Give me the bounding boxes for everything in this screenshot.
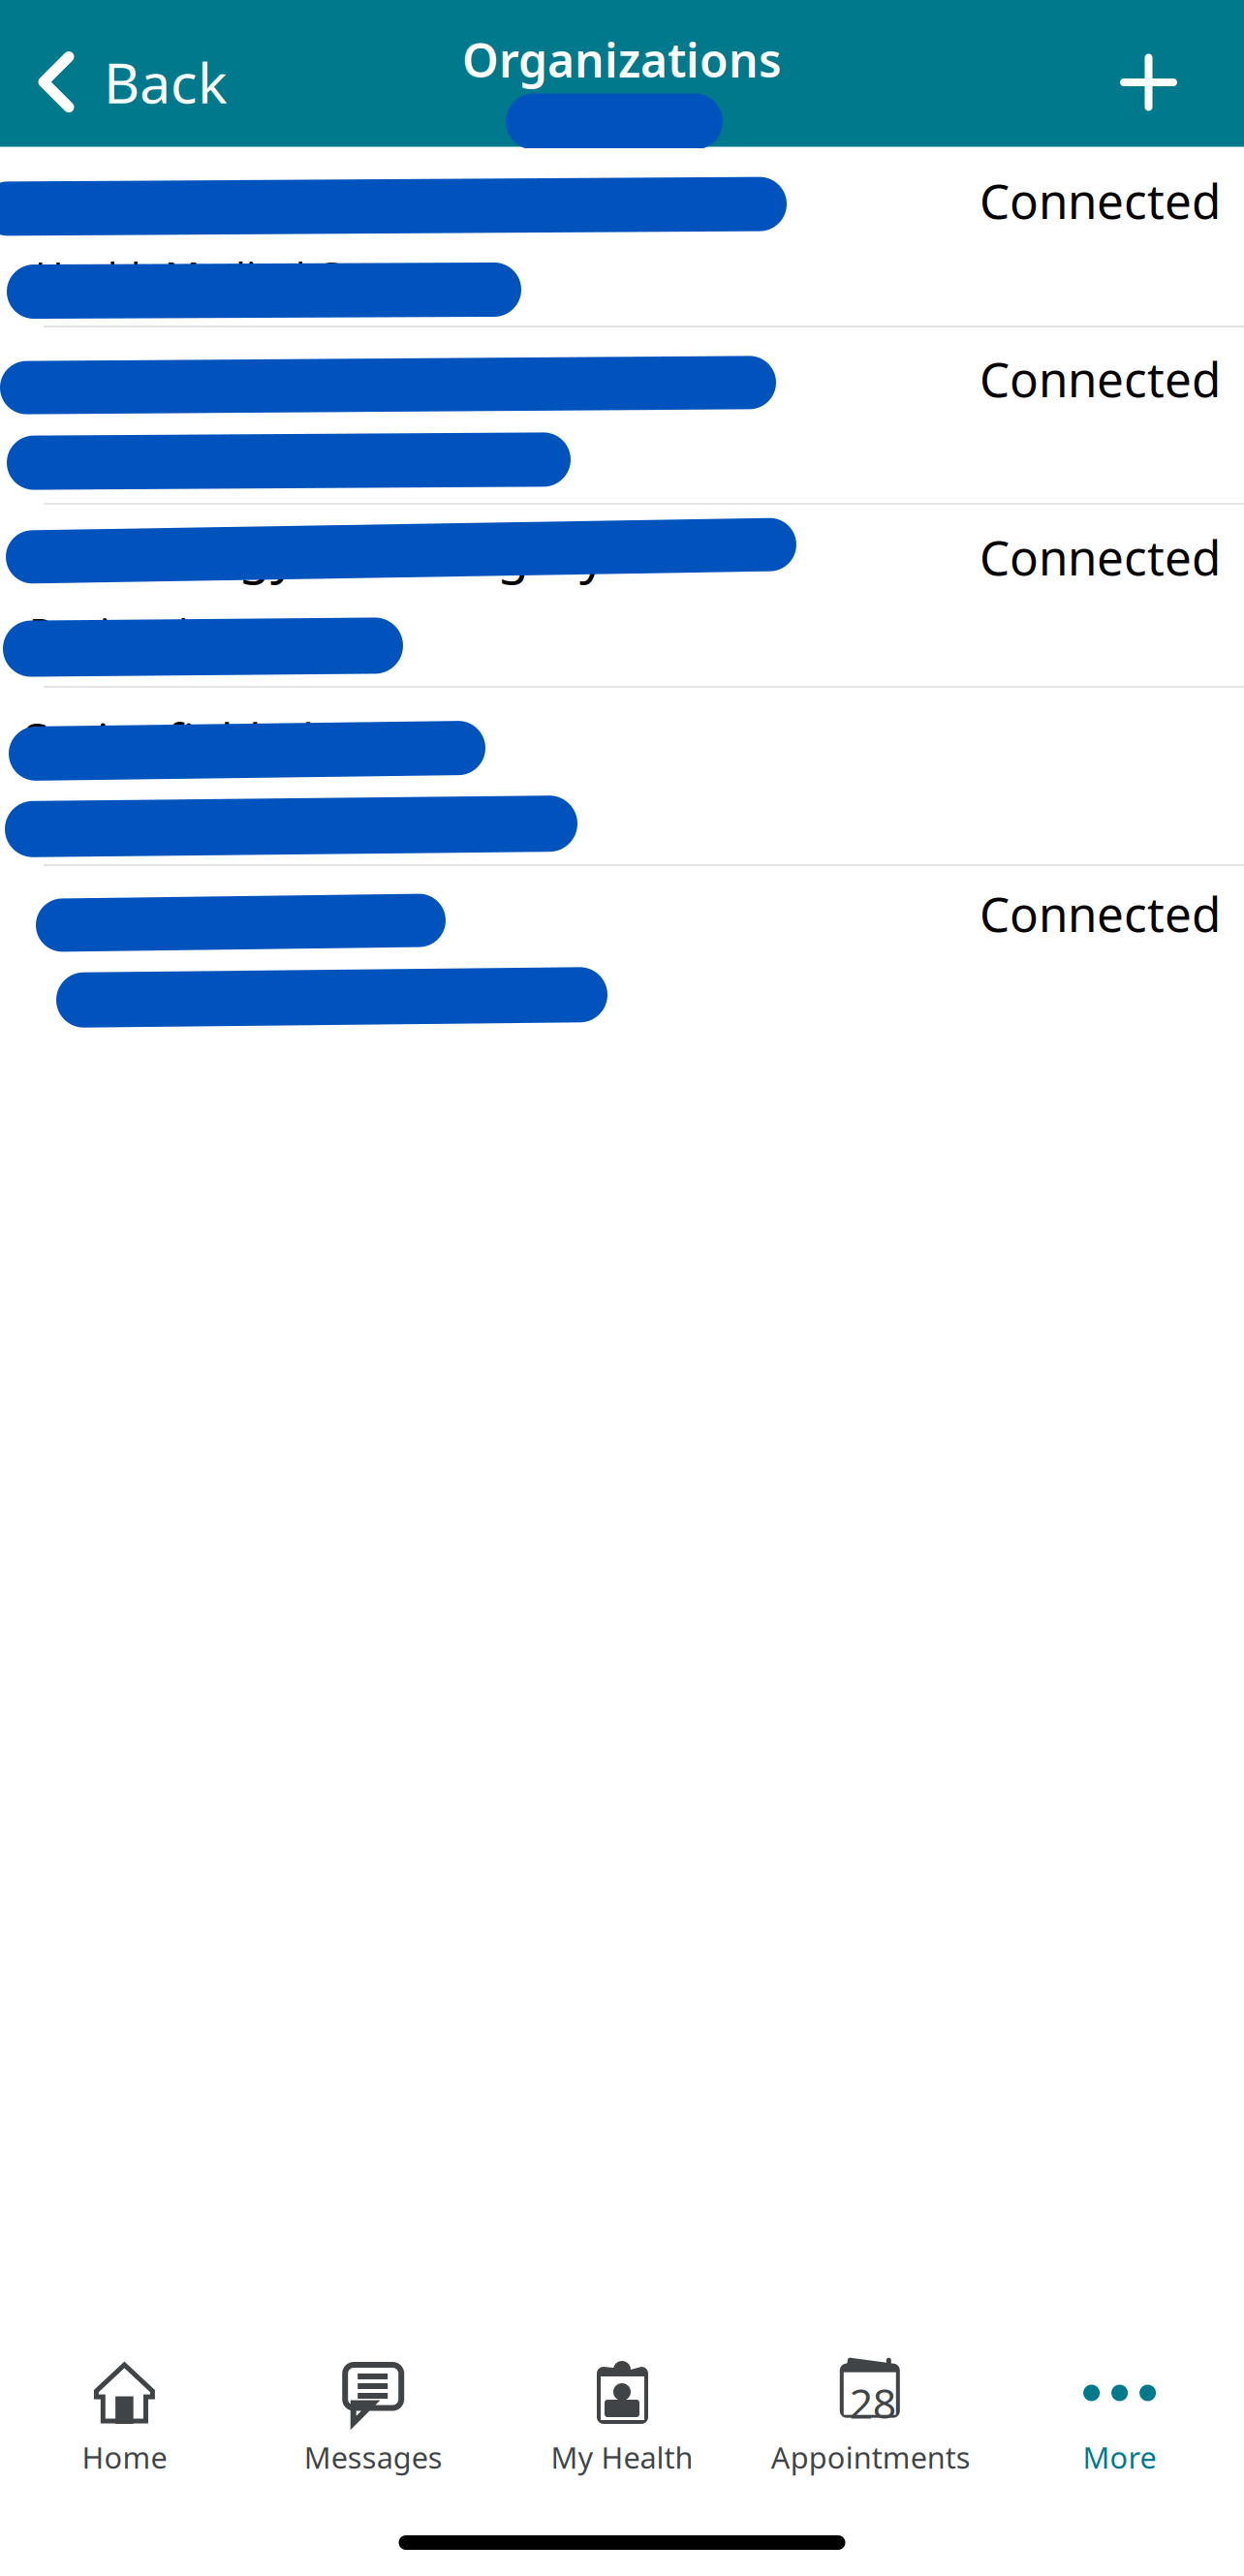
staticText: Health Medical Group	[35, 250, 430, 301]
button[interactable]: Add organization	[1089, 0, 1208, 147]
button[interactable]: Cardiology and Surgery	[0, 505, 1244, 686]
staticText: 28	[849, 2375, 896, 2430]
button[interactable]: Springfield Clinic	[0, 688, 1244, 864]
staticText: Connected	[980, 169, 1221, 232]
staticText: Regional Center	[29, 606, 321, 658]
staticText: Connected	[980, 882, 1221, 945]
staticText: Springfield Clinic	[23, 708, 389, 770]
button[interactable]: Connected	[0, 327, 1244, 503]
button[interactable]: More	[995, 2309, 1244, 2489]
staticText: Appointments	[771, 2437, 971, 2477]
staticText: My Health	[551, 2437, 693, 2477]
button[interactable]: My Health	[498, 2309, 746, 2489]
staticText: Cardiology and Surgery	[35, 518, 606, 587]
staticText: Connected	[980, 347, 1221, 410]
staticText: Connected	[980, 525, 1221, 589]
button[interactable]: Messages	[249, 2309, 498, 2489]
button[interactable]: Back	[0, 0, 251, 147]
staticText: Organizations	[462, 29, 782, 90]
staticText: More	[1083, 2437, 1156, 2477]
button[interactable]: Health Medical Group	[0, 148, 1244, 326]
button[interactable]: Home	[0, 2309, 249, 2489]
button[interactable]: Connected	[0, 866, 1244, 1050]
staticText: Back	[104, 45, 228, 119]
staticText: Home	[82, 2437, 167, 2477]
staticText: Messages	[304, 2437, 442, 2477]
button[interactable]: 28	[746, 2309, 995, 2489]
